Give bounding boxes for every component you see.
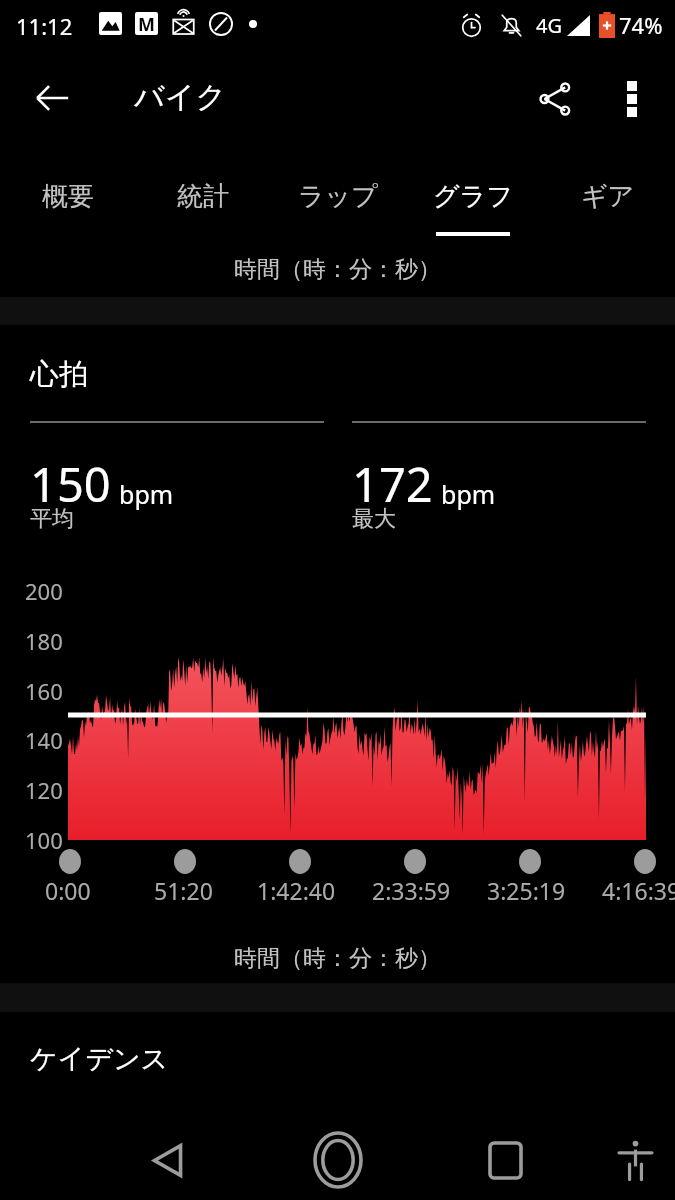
- staticText: 最大: [352, 505, 396, 533]
- button[interactable]: Share: [524, 68, 586, 130]
- button[interactable]: Recent apps: [473, 1128, 537, 1192]
- staticText: 120: [25, 775, 63, 805]
- staticText: グラフ: [433, 180, 513, 213]
- staticText: bpm: [441, 477, 496, 511]
- staticText: 180: [25, 626, 63, 656]
- staticText: 51:20: [154, 875, 213, 906]
- button[interactable]: Home: [302, 1124, 374, 1196]
- staticText: 100: [25, 825, 63, 855]
- staticText: 4G: [536, 12, 562, 39]
- staticText: 0:00: [45, 875, 91, 906]
- staticText: 統計: [177, 180, 229, 213]
- staticText: 74%: [619, 10, 663, 40]
- staticText: 11:12: [16, 11, 73, 41]
- staticText: bpm: [119, 477, 174, 511]
- button[interactable]: ギア: [540, 158, 675, 244]
- staticText: ケイデンス: [30, 1042, 169, 1076]
- staticText: 200: [25, 576, 63, 606]
- button[interactable]: Back: [22, 68, 82, 128]
- staticText: 140: [25, 725, 63, 755]
- button[interactable]: More options: [601, 68, 663, 130]
- button[interactable]: ラップ: [270, 158, 405, 244]
- staticText: 1:42:40: [257, 875, 336, 906]
- staticText: 時間（時：分：秒）: [234, 255, 441, 284]
- staticText: 172: [352, 452, 433, 516]
- staticText: 4:16:39: [602, 875, 675, 906]
- staticText: 平均: [30, 505, 74, 533]
- button[interactable]: 概要: [0, 158, 135, 244]
- button[interactable]: グラフ: [405, 158, 540, 244]
- staticText: 150: [30, 452, 111, 516]
- staticText: 160: [25, 676, 63, 706]
- staticText: M: [138, 12, 155, 35]
- staticText: ギア: [581, 180, 635, 213]
- staticText: 心拍: [30, 356, 88, 393]
- button[interactable]: Back: [135, 1128, 199, 1192]
- staticText: バイク: [134, 78, 227, 116]
- staticText: 2:33:59: [372, 875, 451, 906]
- button[interactable]: 統計: [135, 158, 270, 244]
- button[interactable]: Accessibility: [603, 1128, 667, 1192]
- staticText: 概要: [42, 180, 94, 213]
- staticText: 時間（時：分：秒）: [234, 944, 441, 973]
- staticText: 3:25:19: [487, 875, 566, 906]
- staticText: ラップ: [298, 180, 378, 213]
